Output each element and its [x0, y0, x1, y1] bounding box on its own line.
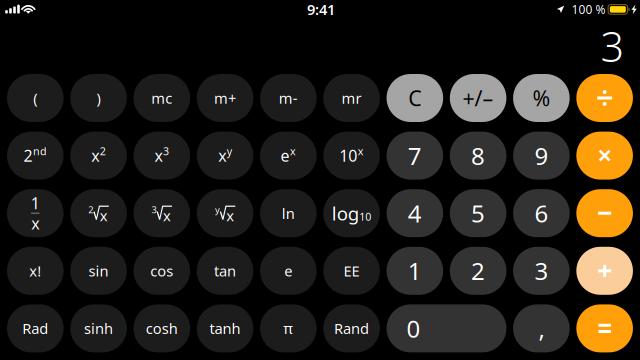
button[interactable]: m- [260, 74, 317, 122]
staticText: C [408, 84, 421, 112]
button[interactable]: log [323, 189, 380, 237]
staticText: 3 [534, 255, 548, 287]
button[interactable]: ln [260, 189, 317, 237]
button[interactable]: tanh [197, 304, 253, 352]
staticText: e [281, 145, 290, 166]
staticText: , [538, 312, 544, 344]
button[interactable]: Divide [576, 74, 633, 122]
staticText: x [358, 144, 364, 158]
staticText: x [290, 144, 296, 158]
button[interactable]: 2 [450, 247, 506, 295]
staticText: log [332, 201, 359, 226]
button[interactable]: Rand [323, 304, 380, 352]
staticText: 9:41 [307, 0, 335, 19]
staticText: ( [33, 88, 37, 108]
button[interactable]: 8 [450, 132, 506, 180]
button[interactable]: Subtract [576, 189, 633, 237]
button[interactable]: x [70, 132, 127, 180]
staticText: 0 [407, 312, 421, 344]
staticText: sinh [84, 319, 113, 338]
staticText: 2 [88, 203, 93, 216]
button[interactable]: e [260, 247, 317, 295]
staticText: 6 [534, 197, 548, 229]
button[interactable]: mr [323, 74, 380, 122]
staticText: 2 [23, 145, 32, 166]
button[interactable]: tan [197, 247, 253, 295]
staticText: x [163, 206, 171, 225]
staticText: +/– [463, 84, 494, 112]
staticText: ) [97, 88, 101, 108]
button[interactable]: y [197, 189, 253, 237]
staticText: mc [151, 88, 172, 108]
button[interactable]: Multiply [576, 132, 633, 180]
button[interactable]: 7 [387, 132, 443, 180]
button[interactable]: 1 [387, 247, 443, 295]
staticText: sin [89, 261, 109, 281]
button[interactable]: % [513, 74, 570, 122]
button[interactable]: 0 [387, 304, 506, 352]
button[interactable]: ) [70, 74, 127, 122]
staticText: x! [29, 261, 41, 281]
button[interactable]: 9 [513, 132, 570, 180]
button[interactable]: cosh [133, 304, 190, 352]
staticText: y [227, 144, 232, 158]
staticText: 5 [471, 197, 485, 229]
staticText: x [226, 206, 234, 225]
staticText: x [91, 145, 99, 166]
staticText: 10 [359, 210, 371, 224]
button[interactable]: π [260, 304, 317, 352]
button[interactable]: 1 [7, 189, 64, 237]
button[interactable]: x! [7, 247, 64, 295]
button[interactable]: sinh [70, 304, 127, 352]
button[interactable]: 3 [513, 247, 570, 295]
staticText: mr [342, 88, 362, 108]
staticText: x [100, 206, 108, 225]
staticText: 3 [600, 19, 624, 73]
staticText: 8 [471, 140, 485, 172]
staticText: tan [214, 261, 236, 281]
button[interactable]: x [197, 132, 253, 180]
staticText: 100 % [572, 1, 606, 17]
button[interactable]: sin [70, 247, 127, 295]
button[interactable]: 6 [513, 189, 570, 237]
button[interactable]: Equals [576, 304, 633, 352]
button[interactable]: 10 [323, 132, 380, 180]
button[interactable]: 2 [7, 132, 64, 180]
staticText: 10 [339, 145, 357, 166]
staticText: x [155, 145, 163, 166]
staticText: EE [344, 261, 360, 281]
button[interactable]: C [387, 74, 443, 122]
button[interactable]: e [260, 132, 317, 180]
button[interactable]: 5 [450, 189, 506, 237]
staticText: π [283, 319, 293, 338]
staticText: m+ [214, 88, 236, 108]
button[interactable]: , [513, 304, 570, 352]
staticText: cosh [146, 319, 178, 338]
staticText: 1 [408, 255, 422, 287]
staticText: % [532, 84, 550, 112]
staticText: 2 [100, 144, 106, 158]
staticText: y [215, 203, 220, 216]
staticText: 1 [31, 192, 40, 214]
staticText: Rad [22, 319, 48, 338]
button[interactable]: mc [133, 74, 190, 122]
staticText: 7 [408, 140, 422, 172]
staticText: m- [279, 88, 298, 108]
staticText: ln [282, 203, 295, 223]
button[interactable]: +/– [450, 74, 506, 122]
button[interactable]: Rad [7, 304, 64, 352]
staticText: tanh [210, 319, 241, 338]
button[interactable]: cos [133, 247, 190, 295]
button[interactable]: 4 [387, 189, 443, 237]
button[interactable]: m+ [197, 74, 253, 122]
button[interactable]: ( [7, 74, 64, 122]
button[interactable]: x [133, 132, 190, 180]
button[interactable]: Add [576, 247, 633, 295]
staticText: Rand [334, 319, 369, 338]
staticText: 3 [152, 203, 157, 216]
staticText: cos [150, 261, 173, 281]
button[interactable]: 3 [133, 189, 190, 237]
button[interactable]: 2 [70, 189, 127, 237]
staticText: 4 [408, 197, 422, 229]
button[interactable]: EE [323, 247, 380, 295]
